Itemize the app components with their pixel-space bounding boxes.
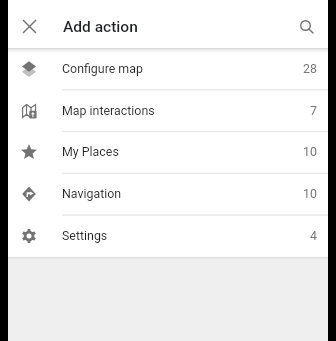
staticText: 7: [310, 103, 317, 118]
button[interactable]: Configure map: [8, 48, 328, 90]
staticText: Map interactions: [62, 103, 155, 118]
button[interactable]: Map interactions: [8, 90, 328, 132]
staticText: My Places: [62, 144, 119, 159]
staticText: Settings: [62, 228, 108, 243]
button[interactable]: Settings: [8, 215, 328, 257]
staticText: Add action: [63, 18, 138, 36]
staticText: 10: [303, 144, 317, 159]
staticText: Configure map: [62, 61, 143, 76]
button[interactable]: Search: [284, 0, 328, 48]
button[interactable]: My Places: [8, 131, 328, 173]
staticText: 10: [303, 186, 317, 201]
staticText: 28: [303, 61, 317, 76]
button[interactable]: Close: [10, 0, 50, 48]
staticText: 4: [310, 228, 317, 243]
staticText: Navigation: [62, 186, 122, 201]
button[interactable]: Navigation: [8, 173, 328, 215]
